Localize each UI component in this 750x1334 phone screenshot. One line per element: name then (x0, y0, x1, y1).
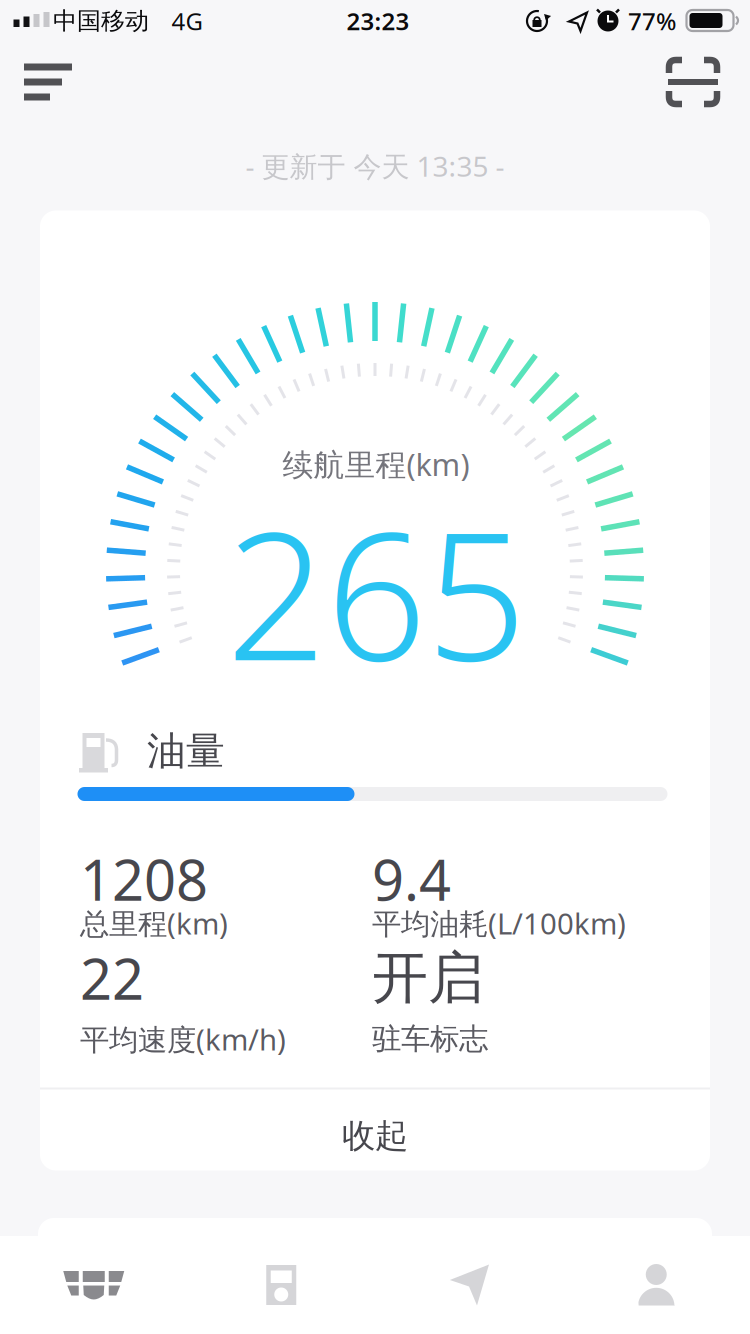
staticText: 77% (628, 5, 676, 37)
staticText: - 更新于 今天 13:35 - (245, 147, 504, 185)
staticText: 开启 (372, 944, 484, 1012)
button[interactable]: 车辆 (24, 1236, 164, 1334)
staticText: 平均速度(km/h) (80, 1019, 286, 1058)
staticText: 驻车标志 (372, 1021, 488, 1057)
button[interactable]: 遥控 (211, 1236, 351, 1334)
button[interactable]: 我的 (586, 1236, 726, 1334)
button[interactable]: 菜单 (12, 38, 100, 126)
staticText: 油量 (147, 727, 225, 775)
staticText: 22 (80, 941, 144, 1015)
staticText: 4G (171, 5, 202, 37)
staticText: 收起 (342, 1115, 408, 1156)
staticText: 续航里程(km) (282, 444, 469, 484)
staticText: 23:23 (346, 5, 409, 37)
staticText: 1208 (80, 842, 208, 916)
button[interactable]: 扫一扫 (649, 38, 737, 126)
staticText: 中国移动 (53, 6, 149, 36)
button[interactable]: 收起 (40, 1096, 710, 1176)
staticText: 9.4 (372, 842, 451, 916)
button[interactable]: 位置 (399, 1236, 539, 1334)
staticText: 265 (226, 475, 526, 709)
staticText: 平均油耗(L/100km) (372, 903, 626, 942)
staticText: 总里程(km) (80, 903, 228, 942)
